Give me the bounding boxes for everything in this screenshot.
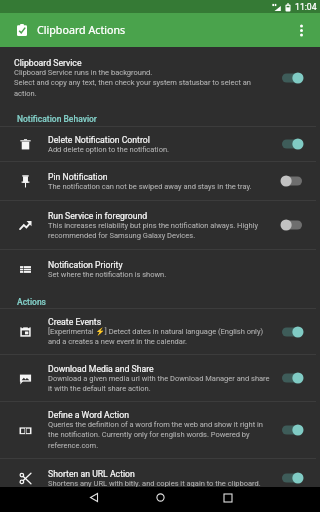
button[interactable]: Back (81, 485, 106, 510)
button[interactable]: Clipboard Service (0, 47, 320, 108)
staticText: Clipboard Service (14, 58, 82, 68)
button[interactable]: Toggle on (277, 67, 307, 89)
button[interactable]: Toggle off (277, 170, 307, 192)
staticText: Notification Behavior (17, 114, 97, 124)
other: Clipboard Actions icon (17, 24, 27, 36)
staticText: Pin Notification (48, 172, 108, 182)
staticText: Shorten an URL Action (48, 469, 135, 479)
button[interactable]: Pin Notification (0, 162, 320, 200)
staticText: Clipboard Service runs in the background… (14, 68, 251, 98)
button[interactable]: Define a Word Action (0, 402, 320, 458)
button[interactable]: Toggle on (277, 419, 307, 441)
staticText: Define a Word Action (48, 410, 129, 420)
button[interactable]: Toggle off (277, 214, 307, 236)
button[interactable]: Delete Notification Control (0, 127, 320, 161)
button[interactable]: Toggle on (277, 133, 307, 155)
staticText: Add delete option to the notification. (48, 145, 170, 154)
button[interactable]: Toggle on (277, 467, 307, 489)
button[interactable]: Toggle on (277, 321, 307, 343)
staticText: Notification Priority (48, 260, 123, 270)
button[interactable]: Notification Priority (0, 250, 320, 288)
staticText: Run Service in foreground (48, 211, 148, 221)
staticText: Shortens any URL with bitly. and copies … (48, 479, 261, 488)
staticText: Queries the definition of a word from th… (48, 420, 263, 450)
button[interactable]: Home (148, 485, 173, 510)
staticText: [Experimental ⚡] Detect dates in natural… (48, 327, 264, 346)
button[interactable]: Run Service in foreground (0, 201, 320, 249)
staticText: Delete Notification Control (48, 135, 150, 145)
button[interactable]: Create Events (0, 309, 320, 354)
staticText: This increases reliability but pins the … (48, 221, 258, 240)
staticText: The notification can not be swiped away … (48, 182, 252, 191)
button[interactable]: Toggle on (277, 367, 307, 389)
button[interactable]: Download Media and Share (0, 355, 320, 401)
staticText: Clipboard Actions (37, 23, 126, 38)
button[interactable]: Shorten an URL Action (0, 459, 320, 497)
staticText: 11:04 (295, 2, 317, 12)
staticText: Download a given media url with the Down… (48, 374, 270, 393)
button[interactable]: Recent apps (215, 485, 240, 510)
staticText: Actions (17, 297, 46, 307)
staticText: Download Media and Share (48, 364, 154, 374)
staticText: Create Events (48, 317, 102, 327)
button[interactable]: More options (284, 13, 318, 47)
staticText: Set where the notification is shown. (48, 270, 167, 279)
